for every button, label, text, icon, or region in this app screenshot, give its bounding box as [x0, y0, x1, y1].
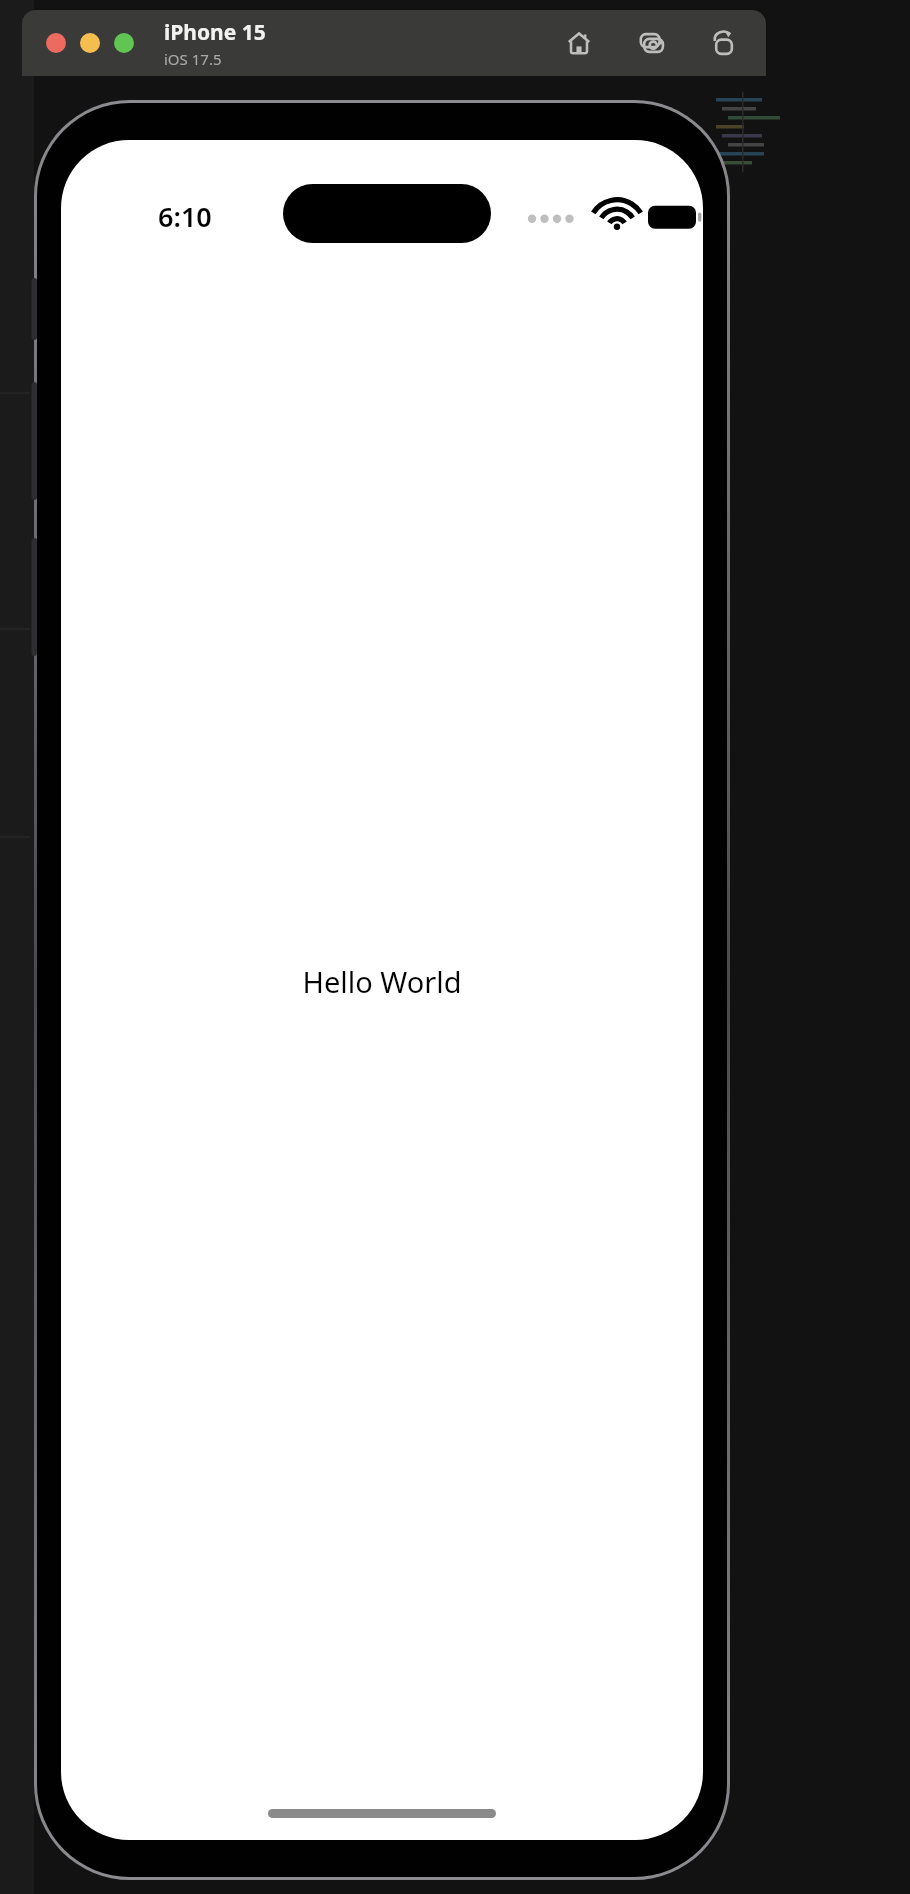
- button[interactable]: Zoom: [114, 33, 134, 53]
- staticText: iOS 17.5: [164, 49, 222, 69]
- button[interactable]: Minimize: [80, 33, 100, 53]
- button[interactable]: Home: [562, 26, 596, 60]
- staticText: iPhone 15: [164, 18, 266, 47]
- button[interactable]: Rotate: [706, 26, 740, 60]
- button[interactable]: Screenshot: [634, 26, 668, 60]
- button[interactable]: Close: [46, 33, 66, 53]
- staticText: Hello World: [302, 962, 462, 1001]
- staticText: 6:10: [158, 198, 212, 235]
